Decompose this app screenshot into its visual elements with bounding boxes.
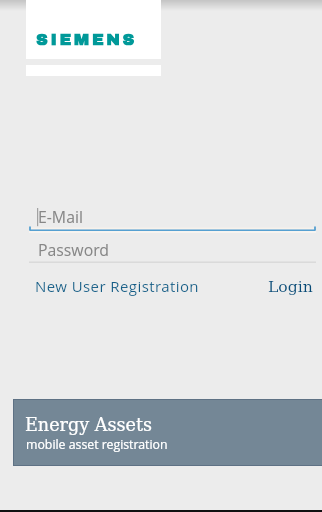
staticText: SIEMENS (36, 31, 138, 49)
button[interactable]: Login (268, 275, 313, 299)
staticText: Password (38, 239, 110, 261)
button[interactable]: E-Mail (0, 203, 322, 230)
button[interactable]: Password (0, 236, 322, 263)
staticText: New User Registration (35, 276, 199, 296)
staticText: mobile asset registration (26, 436, 168, 453)
staticText: Login (268, 278, 313, 296)
button[interactable]: New User Registration (35, 274, 199, 298)
button[interactable]: Energy Assets (14, 400, 322, 465)
staticText: E-Mail (38, 206, 83, 228)
staticText: Energy Assets (25, 415, 153, 435)
